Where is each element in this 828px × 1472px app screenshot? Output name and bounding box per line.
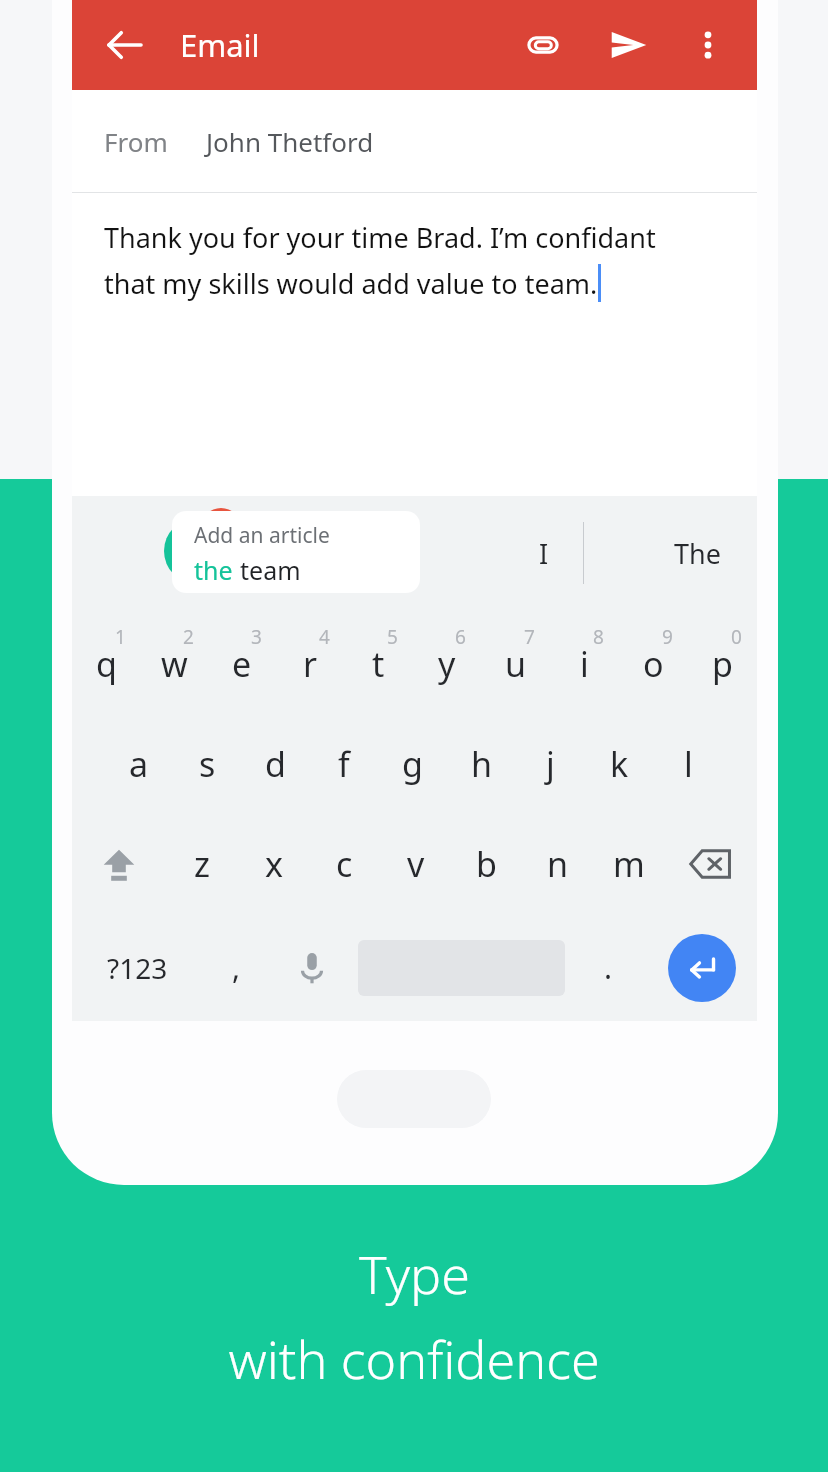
staticText: 2 xyxy=(183,624,194,650)
staticText: u xyxy=(505,641,527,687)
staticText: team xyxy=(240,553,301,587)
staticText: 8 xyxy=(593,624,604,650)
staticText: a xyxy=(129,741,149,787)
staticText: . xyxy=(604,947,613,988)
button[interactable]: Backspace xyxy=(664,814,757,914)
staticText: 5 xyxy=(387,624,398,650)
button[interactable]: Shift xyxy=(72,814,166,914)
staticText: the xyxy=(194,553,240,587)
staticText: ?123 xyxy=(107,949,168,987)
staticText: v xyxy=(407,841,425,887)
staticText: c xyxy=(336,841,353,887)
button[interactable]: I xyxy=(496,496,592,610)
button[interactable]: Add an article xyxy=(172,511,420,593)
button[interactable]: 4 xyxy=(276,610,344,714)
button[interactable]: x xyxy=(238,814,309,914)
staticText: p xyxy=(712,641,733,687)
staticText: y xyxy=(438,641,456,687)
staticText: with confidence xyxy=(228,1323,600,1394)
staticText: x xyxy=(265,841,283,887)
staticText: From xyxy=(104,124,168,159)
button[interactable]: 7 xyxy=(481,610,550,714)
staticText: r xyxy=(303,641,318,687)
staticText: f xyxy=(338,741,350,787)
button[interactable]: Send xyxy=(601,17,657,73)
staticText: g xyxy=(402,741,423,787)
button[interactable]: b xyxy=(451,814,522,914)
button[interactable]: s xyxy=(173,714,241,814)
staticText: t xyxy=(372,641,385,687)
staticText: , xyxy=(232,947,241,988)
staticText: o xyxy=(643,641,664,687)
button[interactable]: ?123 xyxy=(72,914,202,1021)
staticText: Add an article xyxy=(194,521,330,550)
button[interactable]: 2 xyxy=(140,610,208,714)
staticText: 9 xyxy=(662,624,673,650)
staticText: d xyxy=(265,741,286,787)
button[interactable]: k xyxy=(585,714,654,814)
staticText: that my skills would add value to team. xyxy=(104,265,598,302)
button[interactable]: f xyxy=(309,714,378,814)
button[interactable]: v xyxy=(380,814,451,914)
staticText: 4 xyxy=(319,624,330,650)
button[interactable]: 3 xyxy=(208,610,276,714)
button[interactable]: Enter xyxy=(668,934,736,1002)
button[interactable]: 9 xyxy=(619,610,688,714)
button[interactable]: 6 xyxy=(412,610,481,714)
button[interactable]: h xyxy=(447,714,516,814)
staticText: 0 xyxy=(731,624,742,650)
staticText: 7 xyxy=(524,624,535,650)
button[interactable]: d xyxy=(241,714,309,814)
button[interactable]: More options xyxy=(683,20,733,70)
button[interactable]: c xyxy=(309,814,380,914)
staticText: I xyxy=(539,535,549,572)
staticText: l xyxy=(684,741,693,787)
button[interactable]: z xyxy=(166,814,238,914)
staticText: Thank you for your time Brad. I’m confid… xyxy=(104,219,656,256)
staticText: m xyxy=(613,841,645,887)
staticText: 3 xyxy=(216,515,227,541)
button[interactable]: . xyxy=(569,914,647,1021)
staticText: 1 xyxy=(115,624,126,650)
staticText: j xyxy=(546,741,555,787)
button[interactable]: 8 xyxy=(550,610,619,714)
staticText: The xyxy=(674,535,721,572)
staticText: s xyxy=(199,741,216,787)
staticText: i xyxy=(580,641,589,687)
button[interactable]: Back xyxy=(96,17,152,73)
staticText: b xyxy=(476,841,497,887)
staticText: w xyxy=(161,641,188,687)
button[interactable]: m xyxy=(593,814,664,914)
button[interactable]: 1 xyxy=(72,610,140,714)
button[interactable]: 0 xyxy=(688,610,757,714)
button[interactable]: , xyxy=(202,914,270,1021)
button[interactable]: The xyxy=(632,496,762,610)
staticText: e xyxy=(232,641,252,687)
staticText: n xyxy=(547,841,569,887)
staticText: 3 xyxy=(251,624,262,650)
staticText: z xyxy=(194,841,210,887)
button[interactable]: Voice input xyxy=(270,914,354,1021)
button[interactable]: l xyxy=(654,714,723,814)
button[interactable]: Attach xyxy=(515,17,571,73)
staticText: Type xyxy=(359,1238,470,1309)
button[interactable]: n xyxy=(522,814,593,914)
button[interactable]: g xyxy=(378,714,447,814)
staticText: h xyxy=(471,741,493,787)
staticText: John Thetford xyxy=(206,124,374,159)
button[interactable]: Grammarly xyxy=(164,518,230,584)
button[interactable]: a xyxy=(105,714,173,814)
staticText: Email xyxy=(180,24,260,66)
button[interactable]: 5 xyxy=(344,610,412,714)
staticText: 6 xyxy=(455,624,466,650)
staticText: q xyxy=(96,641,117,687)
staticText: k xyxy=(610,741,629,787)
button[interactable]: j xyxy=(516,714,585,814)
